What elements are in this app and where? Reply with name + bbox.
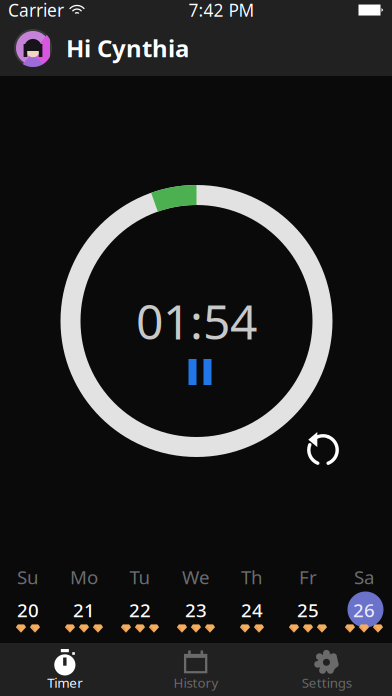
button[interactable]: Pause [188,359,211,385]
staticText: 20 [17,598,39,622]
staticText: Fr [299,565,317,589]
staticText: 21 [73,598,95,622]
staticText: 25 [297,598,319,622]
staticText: 24 [241,598,263,622]
staticText: Sa [354,565,374,589]
staticText: 22 [129,598,151,622]
staticText: 23 [185,598,207,622]
staticText: We [182,565,210,589]
staticText: Th [241,565,263,589]
staticText: Settings [302,674,352,691]
staticText: History [173,674,218,691]
staticText: Hi Cynthia [66,32,189,64]
staticText: Timer [47,674,83,691]
staticText: 01:54 [136,289,257,353]
button[interactable]: Reset [307,430,339,466]
staticText: Mo [70,565,98,589]
button[interactable]: Profile [14,29,52,67]
button[interactable]: History [131,643,261,696]
button[interactable]: Settings [261,643,392,696]
staticText: Tu [129,565,150,589]
staticText: Carrier [8,0,64,21]
staticText: 26 [353,598,375,622]
staticText: 7:42 PM [188,0,254,21]
staticText: Su [17,565,39,589]
button[interactable]: Timer [0,643,131,696]
